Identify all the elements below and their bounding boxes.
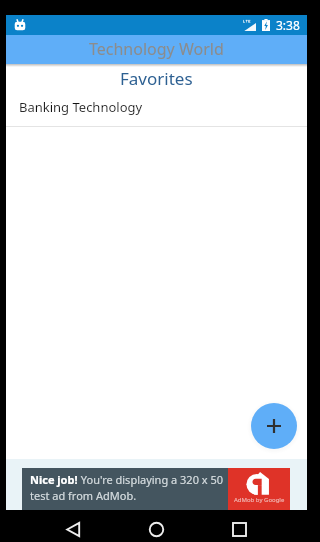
staticText: AdMob by Google [234,496,285,504]
button[interactable]: Recents [217,517,261,542]
button[interactable]: Home [134,517,178,542]
button[interactable]: Nice job! [22,468,228,510]
staticText: Favorites [120,67,193,88]
staticText: Technology World [89,38,224,60]
staticText: You're displaying a 320 x 50 [78,472,224,487]
staticText: test ad from AdMob. [30,488,137,503]
button[interactable]: Back [51,517,95,542]
button[interactable]: Banking Technology [6,88,307,127]
staticText: 3:38 [276,17,300,33]
staticText: Nice job! [30,472,78,487]
button[interactable]: Add [251,403,297,449]
staticText: Banking Technology [19,98,143,116]
